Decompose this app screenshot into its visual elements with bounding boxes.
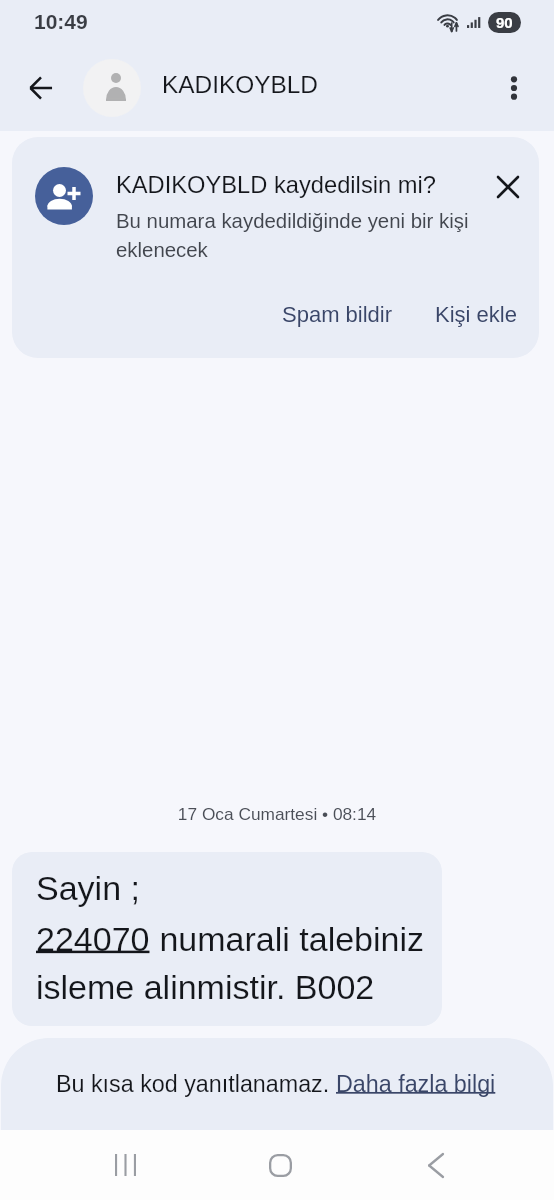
button[interactable]: Home <box>238 1130 322 1200</box>
button[interactable]: Daha fazla bilgi <box>336 1071 496 1097</box>
staticText: numarali talebiniz <box>150 920 425 958</box>
button[interactable]: Back <box>21 68 61 108</box>
button[interactable]: Spam bildir <box>282 302 393 327</box>
staticText: 224070 <box>36 920 150 958</box>
staticText: KADIKOYBLD kaydedilsin mi? <box>116 172 436 198</box>
staticText: isleme alinmistir. B002 <box>36 968 375 1006</box>
button[interactable]: Kişi ekle <box>435 302 517 327</box>
staticText: KADIKOYBLD <box>162 71 318 98</box>
button[interactable]: Recent apps <box>83 1130 167 1200</box>
staticText: Sayin ; <box>36 869 140 907</box>
staticText: 10:49 <box>34 10 88 33</box>
staticText: Bu kısa kod yanıtlanamaz. <box>56 1071 336 1097</box>
staticText: Bu numara kaydedildiğinde yeni bir kişi … <box>116 210 469 261</box>
button[interactable]: More options <box>492 66 536 110</box>
button[interactable]: Sayin ; <box>12 852 442 1026</box>
staticText: 17 Oca Cumartesi • 08:14 <box>0 804 554 823</box>
button[interactable]: Back <box>393 1130 477 1200</box>
staticText: 90 <box>496 14 513 31</box>
button[interactable]: Close <box>490 169 526 205</box>
